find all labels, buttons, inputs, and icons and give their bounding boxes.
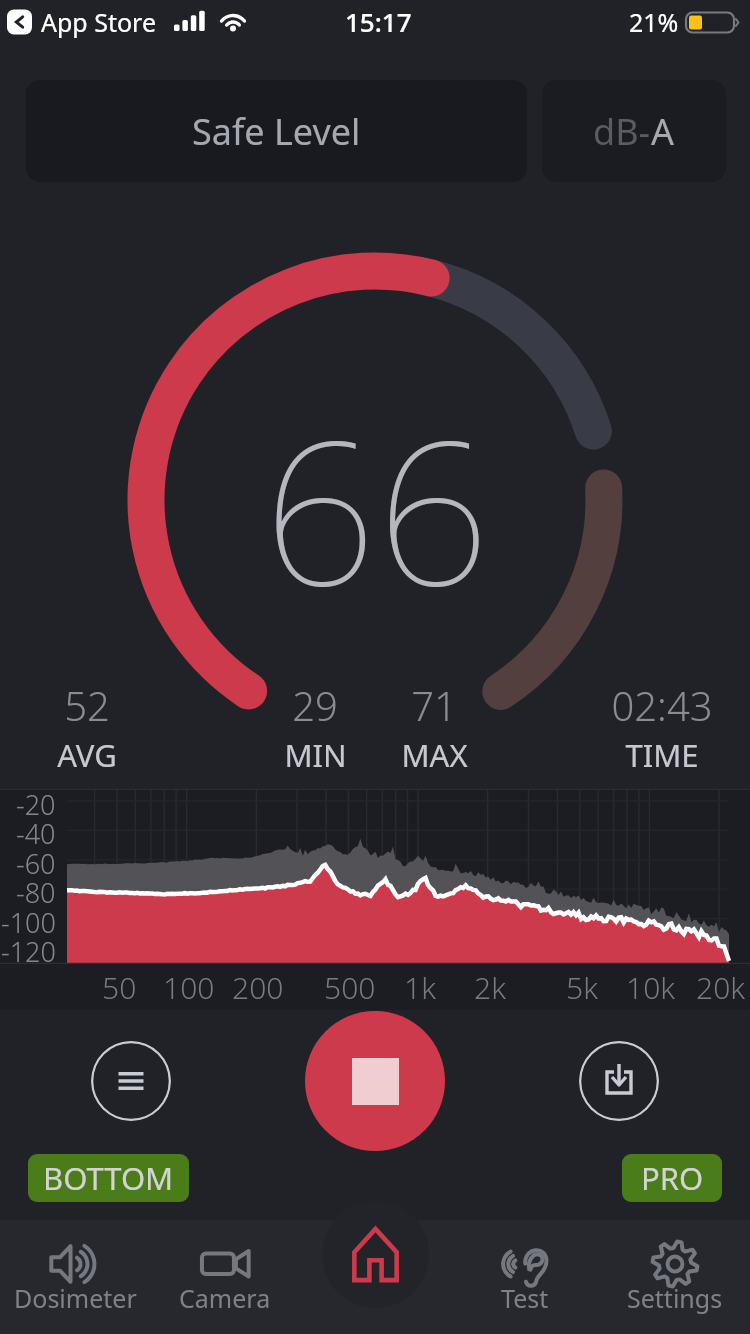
button[interactable]: BOTTOM [28,1154,189,1202]
button[interactable]: Save [579,1041,659,1121]
staticText: dB- [593,107,651,156]
button[interactable]: Safe Level [26,80,527,182]
button[interactable]: Home [322,1201,429,1308]
button[interactable]: Camera [150,1220,300,1334]
button[interactable]: Dosimeter [0,1220,150,1334]
button[interactable]: Stop recording [305,1011,445,1151]
staticText: MIN [284,734,347,776]
staticText: -80 [16,874,56,904]
button[interactable] [300,1220,450,1334]
staticText: TIME [625,734,699,776]
staticText: 15:17 [345,4,412,39]
staticText: 500 [324,967,376,1008]
staticText: MAX [401,734,468,776]
staticText: 10k [626,967,676,1008]
staticText: 71 [411,678,457,732]
staticText: -100 [1,904,56,934]
staticText: 21% [629,5,679,39]
staticText: 5k [566,967,598,1008]
staticText: 66 [263,372,490,632]
staticText: AVG [57,734,117,776]
staticText: -40 [16,815,56,845]
staticText: 02:43 [611,678,713,732]
staticText: 100 [163,967,215,1008]
staticText: 1k [404,967,436,1008]
staticText: Safe Level [192,107,361,156]
staticText: 2k [474,967,506,1008]
staticText: Camera [179,1281,271,1315]
staticText: A [651,107,675,156]
staticText: BOTTOM [43,1157,174,1199]
staticText: Test [501,1281,549,1315]
button[interactable]: PRO [622,1154,722,1202]
button[interactable]: Menu [91,1041,171,1121]
staticText: 50 [102,967,137,1008]
staticText: 20k [696,967,746,1008]
staticText: Dosimeter [14,1281,137,1315]
staticText: PRO [641,1157,704,1199]
staticText: -120 [1,933,56,963]
staticText: Settings [627,1281,723,1315]
button[interactable]: dB- [542,80,726,182]
staticText: 200 [232,967,284,1008]
staticText: App Store [41,5,157,39]
button[interactable]: Settings [600,1220,750,1334]
button[interactable]: Test [450,1220,600,1334]
staticText: -60 [16,845,56,875]
staticText: 52 [64,678,110,732]
staticText: -20 [16,786,56,816]
staticText: 29 [292,678,338,732]
